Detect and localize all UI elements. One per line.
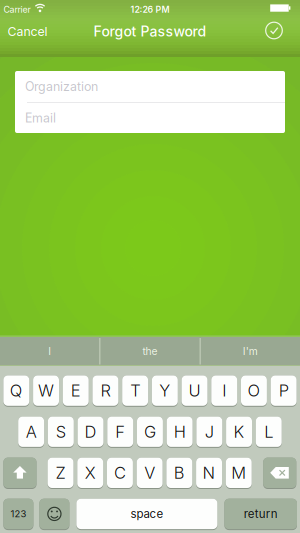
button[interactable]: Cancel <box>7 24 47 39</box>
button[interactable]: the <box>100 337 200 365</box>
staticText: space <box>130 507 163 521</box>
button[interactable]: D <box>78 416 103 448</box>
button[interactable]: 123 <box>3 499 33 530</box>
staticText: G <box>144 422 156 442</box>
button[interactable]: Shift <box>3 458 36 489</box>
button[interactable]: Organization <box>15 71 285 102</box>
button[interactable]: H <box>167 416 193 448</box>
staticText: Y <box>159 381 170 401</box>
button[interactable]: S <box>48 416 74 448</box>
button[interactable]: Delete <box>263 458 296 489</box>
button[interactable]: B <box>166 458 192 489</box>
button[interactable]: C <box>107 458 133 489</box>
staticText: B <box>174 463 185 483</box>
staticText: J <box>205 422 214 442</box>
button[interactable]: I'm <box>201 337 300 365</box>
button[interactable]: O <box>241 375 267 407</box>
staticText: Z <box>55 463 65 483</box>
staticText: H <box>174 422 186 442</box>
button[interactable]: P <box>271 375 297 407</box>
staticText: 12:26 PM <box>130 4 169 15</box>
staticText: return <box>244 507 278 521</box>
button[interactable]: V <box>137 458 163 489</box>
button[interactable]: space <box>76 499 217 530</box>
button[interactable]: Q <box>3 375 29 407</box>
button[interactable]: N <box>196 458 222 489</box>
staticText: F <box>115 422 125 442</box>
button[interactable]: I <box>211 375 237 407</box>
button[interactable]: X <box>77 458 103 489</box>
button[interactable]: G <box>137 416 163 448</box>
staticText: L <box>264 422 273 442</box>
staticText: Carrier <box>3 4 30 15</box>
staticText: U <box>188 381 200 401</box>
button[interactable]: J <box>196 416 222 448</box>
staticText: P <box>279 381 289 401</box>
staticText: Q <box>10 381 23 401</box>
staticText: the <box>142 345 157 357</box>
button[interactable]: A <box>18 416 44 448</box>
staticText: I'm <box>243 345 258 357</box>
staticText: C <box>114 463 126 483</box>
button[interactable]: U <box>182 375 207 407</box>
button[interactable]: Y <box>152 375 178 407</box>
button[interactable]: T <box>122 375 148 407</box>
staticText: K <box>233 422 244 442</box>
staticText: R <box>100 381 110 401</box>
staticText: N <box>202 463 215 483</box>
button[interactable]: I <box>0 337 99 365</box>
staticText: O <box>247 381 260 401</box>
staticText: X <box>85 463 96 483</box>
button[interactable]: Emoji <box>39 499 69 530</box>
button[interactable]: return <box>224 499 297 530</box>
button[interactable]: Submit <box>263 19 285 43</box>
staticText: I <box>48 345 51 357</box>
staticText: T <box>130 381 140 401</box>
staticText: W <box>38 381 54 401</box>
staticText: Forgot Password <box>93 23 206 40</box>
staticText: Organization <box>25 79 98 94</box>
staticText: D <box>84 422 96 442</box>
staticText: Email <box>25 110 56 125</box>
staticText: 123 <box>10 508 26 520</box>
staticText: M <box>231 463 246 483</box>
staticText: A <box>26 422 37 442</box>
button[interactable]: F <box>107 416 133 448</box>
button[interactable]: E <box>63 375 89 407</box>
staticText: Cancel <box>7 24 47 39</box>
staticText: I <box>222 381 226 401</box>
button[interactable]: L <box>256 416 282 448</box>
button[interactable]: R <box>92 375 118 407</box>
button[interactable]: M <box>226 458 252 489</box>
button[interactable]: Z <box>48 458 73 489</box>
staticText: S <box>56 422 66 442</box>
button[interactable]: Email <box>15 103 285 133</box>
staticText: V <box>144 463 155 483</box>
button[interactable]: W <box>33 375 59 407</box>
button[interactable]: K <box>226 416 252 448</box>
staticText: E <box>71 381 81 401</box>
